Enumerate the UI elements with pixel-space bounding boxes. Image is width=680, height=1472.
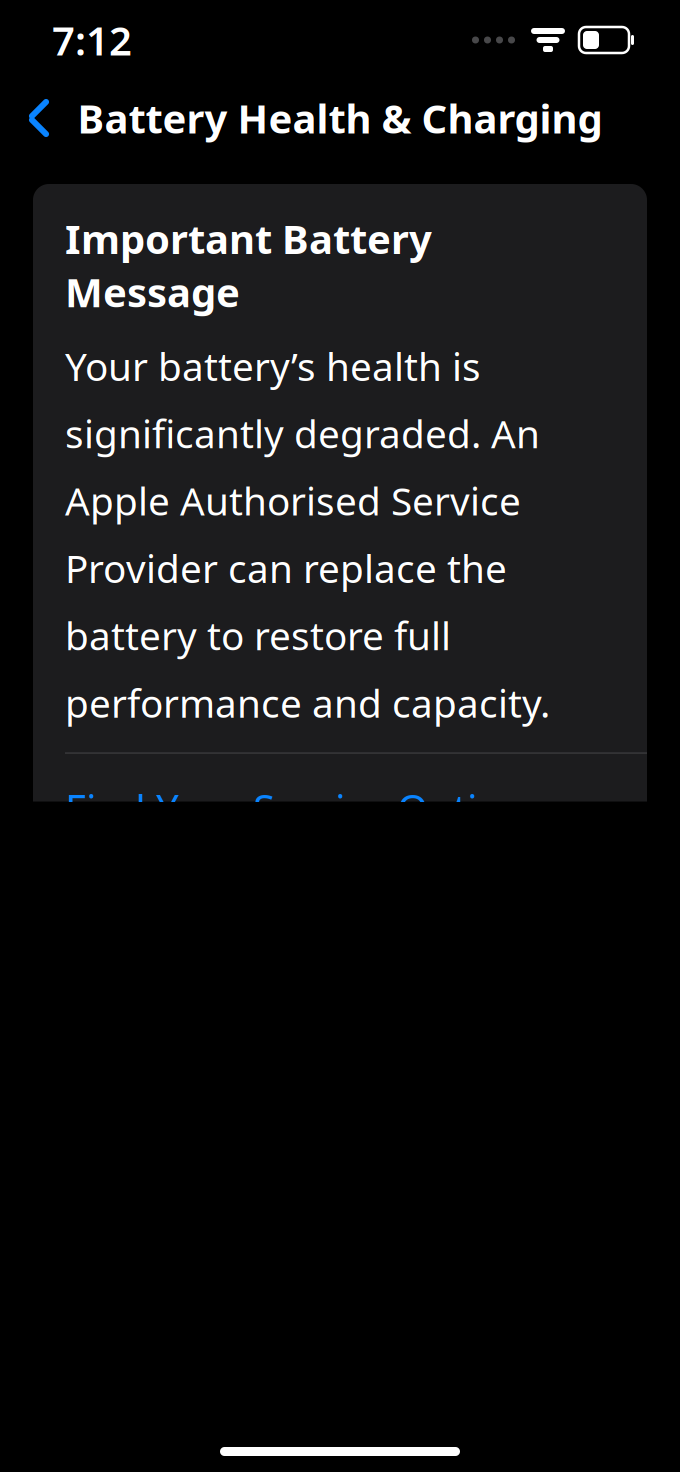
staticText: Find Your Service Options — [65, 782, 545, 835]
button[interactable]: Peak Performance Capability — [33, 1403, 647, 1472]
staticText: Battery Health & Charging — [77, 91, 602, 144]
staticText: Your battery’s health is significantly d… — [65, 340, 550, 728]
staticText: Peak Performance Capability — [65, 1424, 603, 1472]
button[interactable]: Back — [8, 87, 70, 149]
staticText: 7:12 — [52, 13, 132, 66]
staticText: Important Battery Message — [65, 212, 432, 318]
button[interactable]: Find Your Service Options — [33, 754, 647, 865]
